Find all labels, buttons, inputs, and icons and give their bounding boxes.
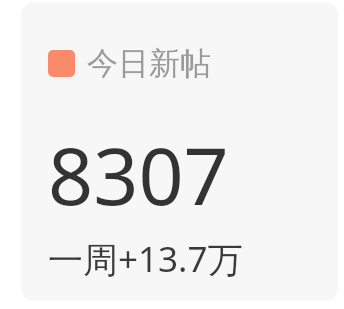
button[interactable]: Category color [48,44,211,83]
staticText: 8307 [48,121,229,229]
staticText: 今日新帖 [87,44,211,83]
button[interactable]: Category color [21,2,338,301]
other: Category color [48,50,75,77]
staticText: 一周+13.7万 [48,235,243,283]
